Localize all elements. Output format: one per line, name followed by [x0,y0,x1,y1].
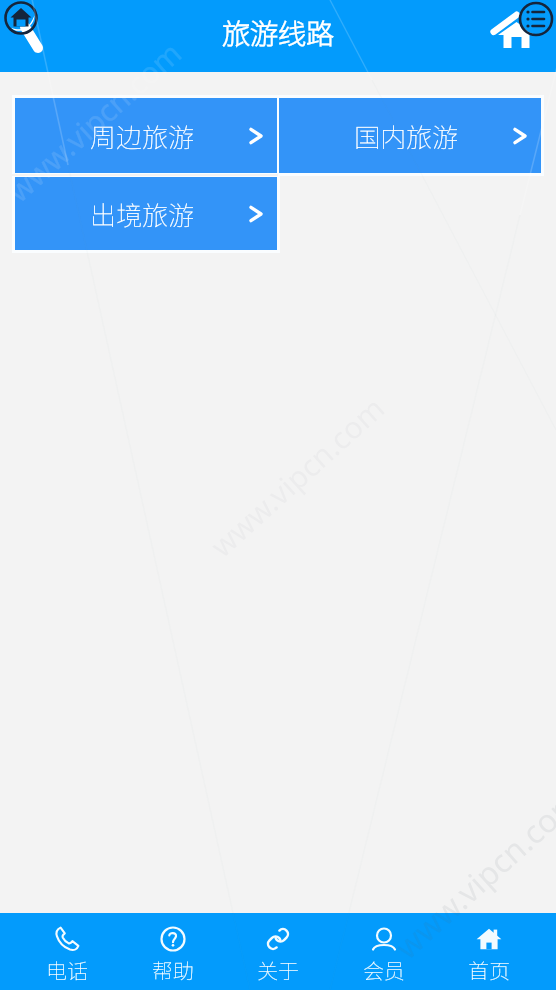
button[interactable]: 周边旅游 [15,98,277,173]
button[interactable]: Phone [15,913,119,990]
staticText: www.vipcn.com [385,778,556,968]
staticText: 国内旅游 [354,117,459,155]
staticText: www.vipcn.com [0,32,190,211]
staticText: 出境旅游 [90,195,195,233]
button[interactable]: 出境旅游 [15,177,277,250]
button[interactable]: 国内旅游 [279,98,541,173]
staticText: 帮助 [152,955,194,985]
button[interactable]: Search [0,0,62,62]
staticText: 电话 [46,955,88,985]
staticText: 关于 [257,955,299,985]
button[interactable]: About [226,913,330,990]
staticText: 旅游线路 [222,12,335,53]
button[interactable]: Menu [490,0,556,62]
staticText: 首页 [468,955,510,985]
button[interactable]: Member [332,913,436,990]
staticText: 会员 [363,955,405,985]
button[interactable]: Help [121,913,225,990]
button[interactable]: Home [437,913,541,990]
staticText: 周边旅游 [90,117,195,155]
